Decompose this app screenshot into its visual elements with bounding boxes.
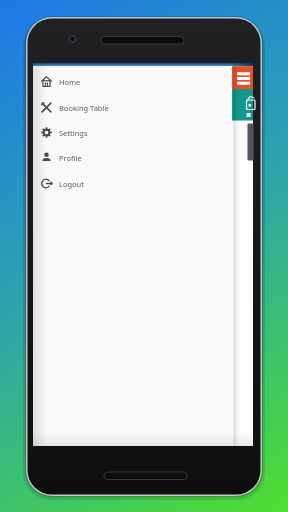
button[interactable]: Settings	[33, 120, 232, 145]
button[interactable]: Booking Table	[33, 95, 232, 120]
staticText: Booking Table	[59, 103, 109, 113]
button[interactable]: Profile	[33, 145, 232, 170]
button[interactable]: Home	[33, 69, 232, 94]
staticText: Home	[59, 77, 81, 87]
button[interactable]	[231, 66, 254, 89]
staticText: Settings	[59, 128, 88, 138]
staticText: Profile	[59, 153, 82, 163]
staticText: Logout	[59, 179, 84, 189]
button[interactable]: Logout	[33, 171, 232, 196]
